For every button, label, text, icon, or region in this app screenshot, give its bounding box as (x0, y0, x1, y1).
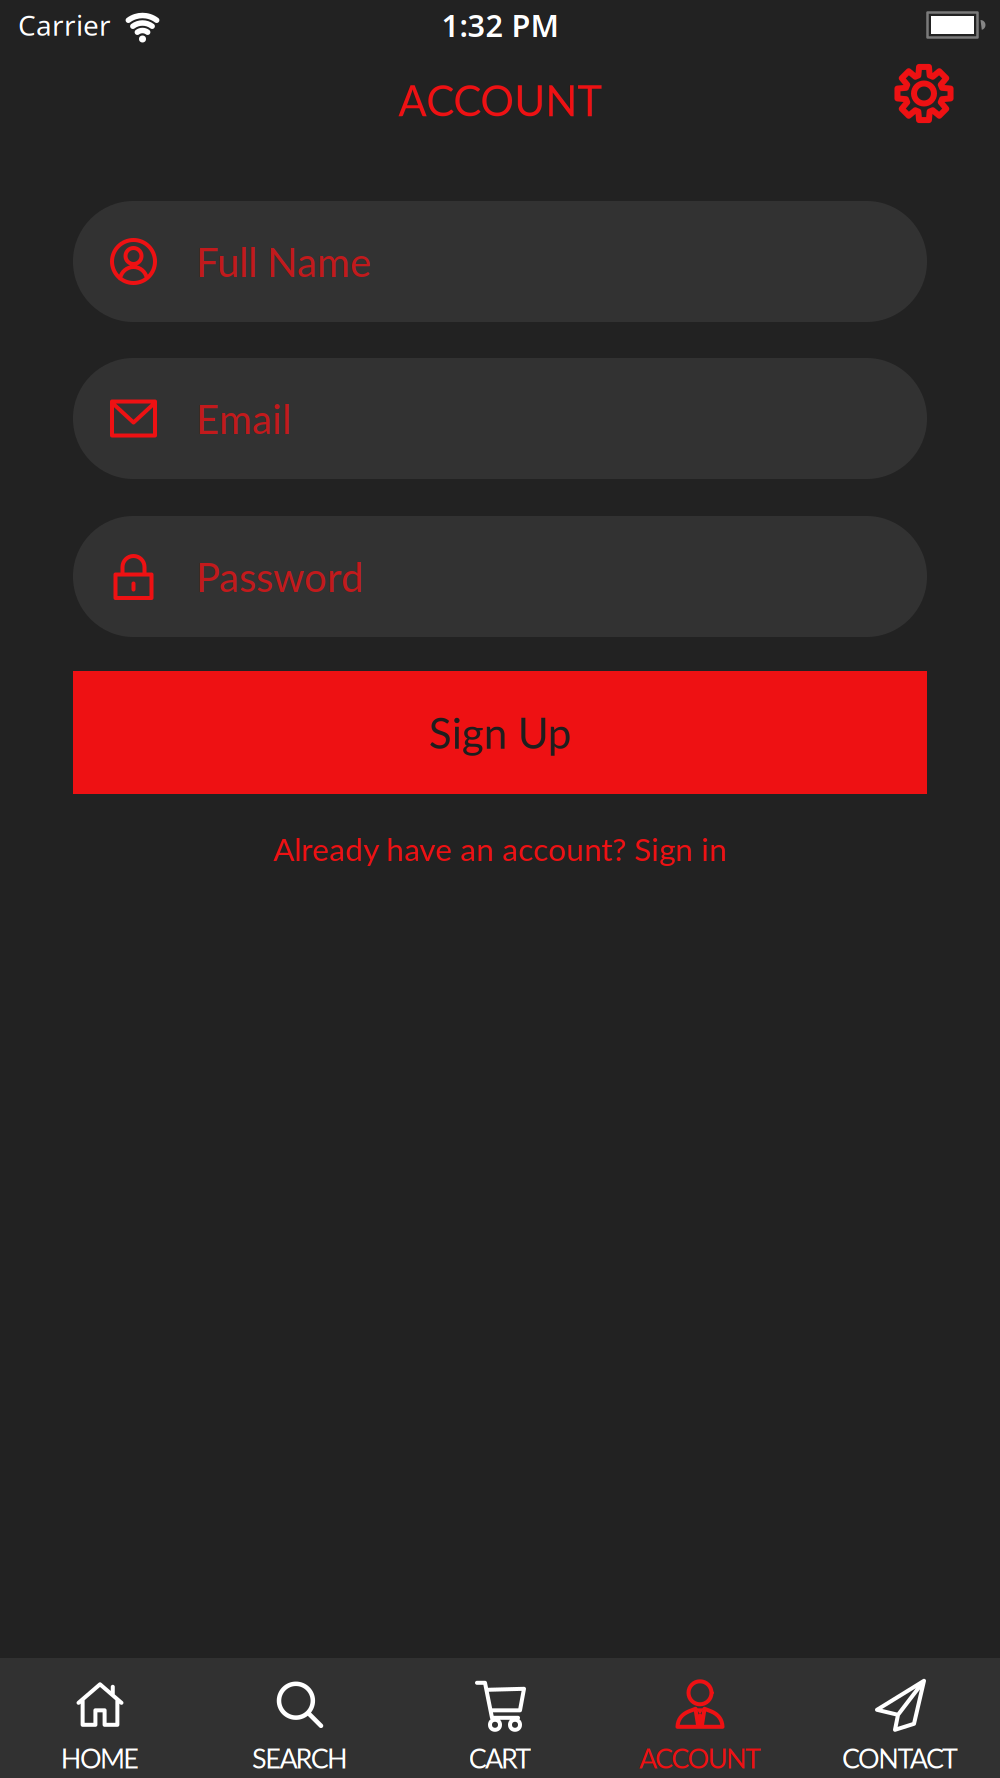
staticText: CONTACT (842, 1742, 958, 1774)
button[interactable]: Sign Up (73, 671, 927, 794)
button[interactable]: Settings (894, 63, 954, 123)
staticText: SEARCH (252, 1742, 348, 1774)
staticText: 1:32 PM (441, 5, 558, 45)
button[interactable]: CART (400, 1658, 600, 1778)
staticText: Already have an account? Sign in (273, 830, 727, 868)
button[interactable]: Email (73, 358, 927, 479)
staticText: Email (196, 394, 291, 442)
staticText: ACCOUNT (639, 1742, 761, 1774)
staticText: Carrier (18, 6, 111, 44)
staticText: CART (469, 1742, 531, 1774)
staticText: Password (196, 552, 363, 600)
button[interactable]: Password (73, 516, 927, 637)
staticText: Sign Up (428, 707, 571, 758)
button[interactable]: HOME (0, 1658, 200, 1778)
button[interactable]: SEARCH (200, 1658, 400, 1778)
staticText: ACCOUNT (398, 75, 602, 125)
button[interactable]: CONTACT (800, 1658, 1000, 1778)
button[interactable]: ACCOUNT (600, 1658, 800, 1778)
staticText: HOME (61, 1742, 139, 1774)
button[interactable]: Already have an account? Sign in (273, 830, 727, 868)
staticText: Full Name (196, 237, 371, 285)
button[interactable]: Full Name (73, 201, 927, 322)
